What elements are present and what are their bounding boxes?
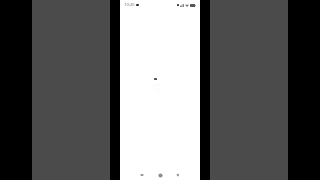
staticText: 10:25 <box>124 2 135 8</box>
button[interactable]: Back <box>136 170 148 180</box>
button[interactable]: Home <box>154 170 166 180</box>
button[interactable]: Recent apps <box>172 170 184 180</box>
